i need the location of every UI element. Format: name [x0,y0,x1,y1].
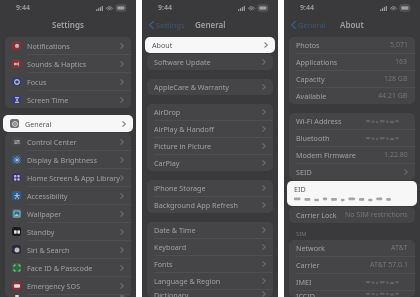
staticText: 9:44 [16,3,30,13]
staticText: Picture in Picture [154,141,262,151]
button[interactable]: Dictionary [147,290,273,297]
button[interactable]: General [3,115,133,132]
staticText: Applications [296,57,395,67]
button[interactable]: Wi-Fi Address [289,113,415,129]
staticText: Screen Time [27,95,120,105]
staticText: Bluetooth [296,133,366,143]
staticText: AT&T [391,243,408,253]
button[interactable]: Standby [5,223,131,240]
staticText: SEID [296,167,401,177]
staticText: iPhone Storage [154,183,262,193]
staticText: Wi-Fi Address [296,116,366,126]
staticText: Capacity [296,74,384,84]
staticText: AppleCare & Warranty [154,82,262,92]
staticText: Settings [156,20,185,30]
button[interactable]: Available [289,88,415,104]
staticText: Dictionary [154,290,262,297]
staticText: Sounds & Haptics [27,59,120,69]
staticText: AirDrop [154,107,262,117]
staticText: Control Center [27,137,120,147]
button[interactable]: Carrier [289,257,415,273]
button[interactable]: Home Screen & App Library [5,169,131,186]
staticText: Settings [52,19,84,30]
staticText: Notifications [27,41,120,51]
staticText: Modem Firmware [296,150,384,160]
staticText: AT&T 57.0.1 [370,260,408,270]
staticText: EID [294,184,306,194]
staticText: 163 [395,57,408,67]
button[interactable]: Siri & Search [5,241,131,258]
button[interactable]: Wallpaper [5,205,131,222]
button[interactable]: Notifications [5,37,131,54]
button[interactable]: Capacity [289,71,415,87]
button[interactable]: Exposure Notifications [5,295,131,297]
staticText: 128 GB [384,74,408,84]
staticText: Carrier [296,260,370,270]
button[interactable]: iPhone Storage [147,180,273,196]
staticText: Emergency SOS [27,281,120,291]
button[interactable]: AirPlay & Handoff [147,121,273,137]
staticText: CarPlay [154,158,262,168]
button[interactable]: Display & Brightness [5,151,131,168]
button[interactable]: AppleCare & Warranty [147,79,273,95]
staticText: ICCID [296,291,366,297]
staticText: Photos [296,40,390,50]
staticText: Wallpaper [27,209,120,219]
staticText: About [152,40,264,50]
button[interactable]: General [289,18,328,32]
button[interactable]: Background App Refresh [147,197,273,213]
staticText: 5,071 [390,40,408,50]
staticText: Focus [27,77,120,87]
staticText: General [25,119,122,129]
staticText: Available [296,91,378,101]
staticText: Carrier Lock [296,210,345,220]
button[interactable]: Fonts [147,256,273,272]
staticText: SIM [296,230,307,238]
button[interactable]: Applications [289,54,415,70]
button[interactable]: IMEI [289,274,415,290]
button[interactable]: CarPlay [147,155,273,171]
button[interactable]: AirDrop [147,104,273,120]
staticText: 44.21 GB [378,91,408,101]
button[interactable]: Software Update [147,54,273,70]
staticText: 9:44 [300,3,314,13]
button[interactable]: ICCID [289,291,415,297]
button[interactable]: Carrier Lock [289,207,415,223]
button[interactable]: Emergency SOS [5,277,131,294]
staticText: IMEI [296,277,366,287]
button[interactable]: Language & Region [147,273,273,289]
button[interactable]: Bluetooth [289,130,415,146]
button[interactable]: Focus [5,73,131,90]
button[interactable]: Sounds & Haptics [5,55,131,72]
button[interactable]: Picture in Picture [147,138,273,154]
staticText: About [340,19,364,30]
button[interactable]: Accessibility [5,187,131,204]
button[interactable]: Network [289,240,415,256]
button[interactable]: Settings [147,18,187,32]
staticText: Network [296,243,391,253]
staticText: Software Update [154,57,262,67]
staticText: General [195,19,226,30]
button[interactable]: SEID [289,164,415,180]
staticText: Fonts [154,259,262,269]
staticText: Home Screen & App Library [27,173,120,183]
button[interactable]: About [145,37,275,53]
button[interactable]: Face ID & Passcode [5,259,131,276]
button[interactable]: Screen Time [5,91,131,108]
button[interactable]: Date & Time [147,222,273,238]
button[interactable]: Keyboard [147,239,273,255]
staticText: Siri & Search [27,245,120,255]
staticText: Standby [27,227,120,237]
button[interactable]: EID [287,181,417,206]
staticText: No SIM restrictions [345,210,408,220]
button[interactable]: Photos [289,37,415,53]
staticText: General [298,20,326,30]
staticText: Date & Time [154,225,262,235]
button[interactable]: Control Center [5,133,131,150]
staticText: Face ID & Passcode [27,263,120,273]
staticText: 9:44 [158,3,172,13]
staticText: AirPlay & Handoff [154,124,262,134]
button[interactable]: Modem Firmware [289,147,415,163]
staticText: Keyboard [154,242,262,252]
